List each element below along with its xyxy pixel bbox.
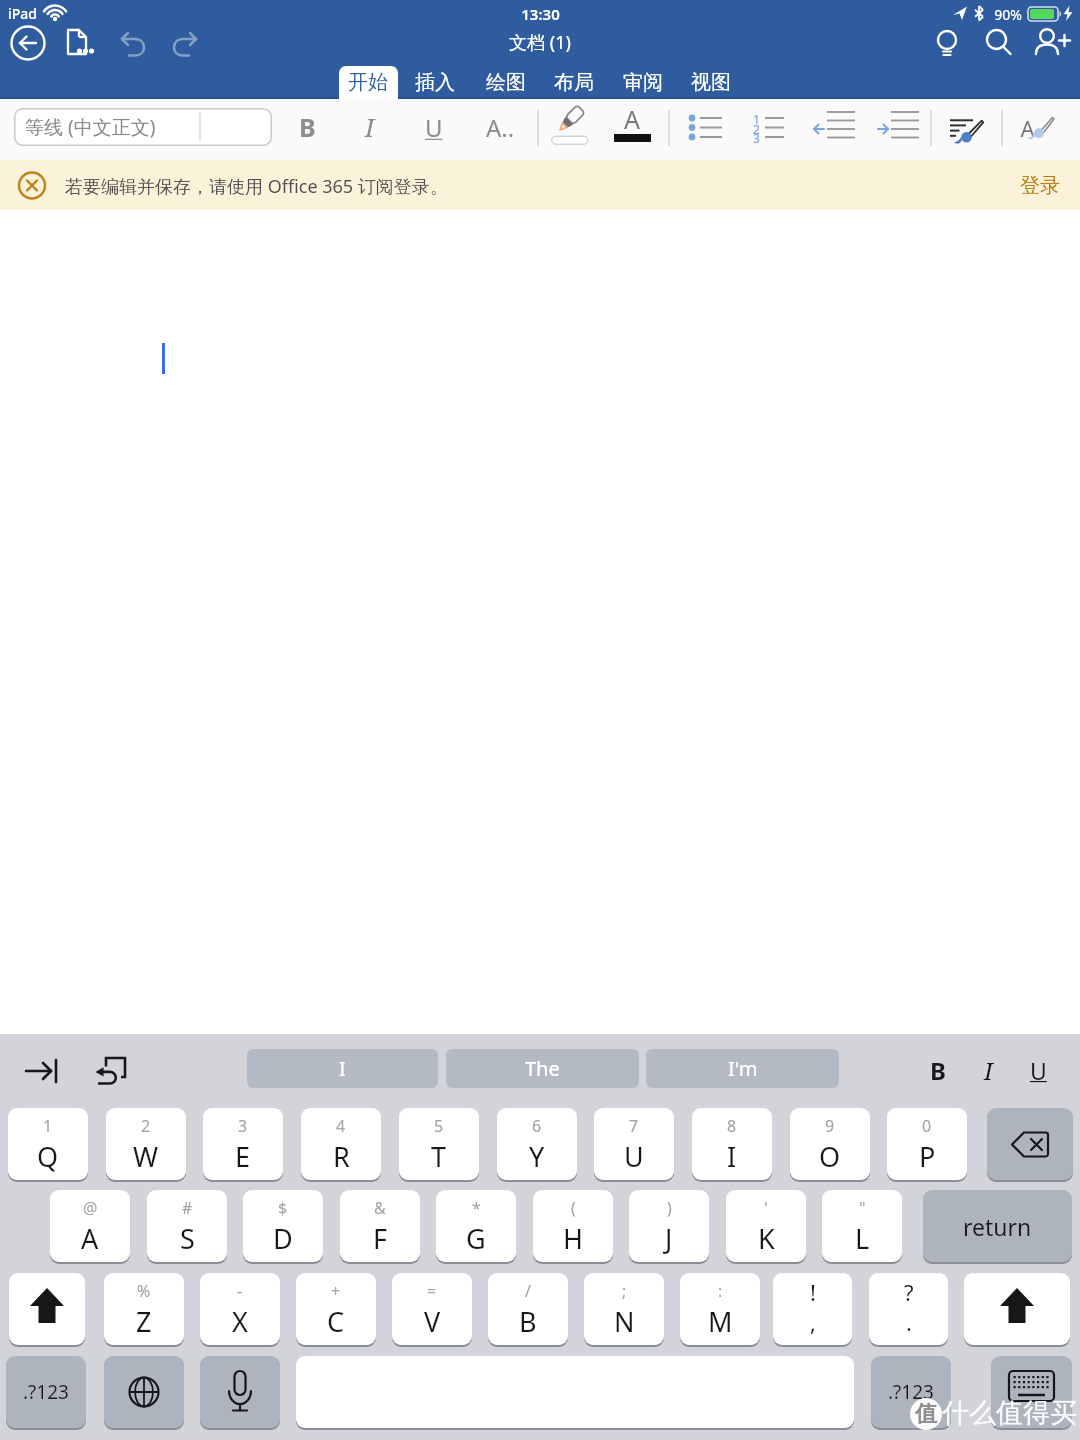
staticText: : <box>718 1280 723 1302</box>
button[interactable] <box>867 103 923 151</box>
button[interactable] <box>104 1356 184 1428</box>
button[interactable]: " <box>822 1190 902 1262</box>
staticText: T <box>431 1138 447 1175</box>
button[interactable]: % <box>104 1273 184 1345</box>
button[interactable] <box>21 1049 65 1093</box>
button[interactable]: * <box>436 1190 516 1262</box>
button[interactable] <box>937 103 993 151</box>
button[interactable]: B <box>915 1048 960 1093</box>
button[interactable]: / <box>488 1273 568 1345</box>
button[interactable]: .?123 <box>871 1356 951 1428</box>
button[interactable] <box>742 103 798 151</box>
button[interactable]: I'm <box>646 1049 839 1088</box>
button[interactable] <box>982 26 1016 60</box>
button[interactable]: 等线 (中文正文) <box>14 108 272 146</box>
button[interactable] <box>679 103 735 151</box>
button[interactable]: I <box>247 1049 438 1088</box>
button[interactable] <box>64 26 96 58</box>
button[interactable]: @ <box>50 1190 130 1262</box>
button[interactable]: 4 <box>301 1108 381 1180</box>
button[interactable] <box>987 1108 1073 1180</box>
button[interactable]: return <box>923 1190 1072 1262</box>
button[interactable]: ! <box>773 1273 852 1345</box>
button[interactable]: : <box>680 1273 760 1345</box>
staticText: = <box>427 1280 437 1302</box>
button[interactable]: - <box>200 1273 280 1345</box>
button[interactable] <box>200 1356 280 1428</box>
button[interactable]: A.. <box>474 105 526 149</box>
staticText: C <box>327 1303 345 1340</box>
button[interactable] <box>9 24 47 62</box>
button[interactable] <box>542 103 598 151</box>
staticText: U <box>1030 1055 1047 1086</box>
button[interactable]: 3 <box>203 1108 283 1180</box>
staticText: B <box>930 1054 946 1087</box>
button[interactable] <box>604 103 660 151</box>
button[interactable] <box>930 26 964 60</box>
button[interactable] <box>9 1273 85 1345</box>
button[interactable] <box>803 103 859 151</box>
button[interactable]: ? <box>869 1273 948 1345</box>
button[interactable]: .?123 <box>6 1356 86 1428</box>
button[interactable]: 绘图 <box>473 66 539 98</box>
staticText: J <box>665 1220 673 1257</box>
staticText: Y <box>529 1138 545 1175</box>
staticText: S <box>180 1220 195 1257</box>
button[interactable] <box>339 66 398 100</box>
staticText: I'm <box>728 1055 758 1082</box>
staticText: 绘图 <box>486 70 526 95</box>
button[interactable] <box>88 1048 132 1092</box>
button[interactable]: 0 <box>887 1108 967 1180</box>
staticText: A <box>624 102 640 136</box>
button[interactable]: + <box>296 1273 376 1345</box>
staticText: / <box>525 1280 531 1302</box>
button[interactable]: 6 <box>497 1108 577 1180</box>
button[interactable]: 审阅 <box>610 66 676 98</box>
button[interactable]: ; <box>584 1273 664 1345</box>
staticText: 0 <box>922 1115 932 1137</box>
button[interactable]: ) <box>629 1190 709 1262</box>
button[interactable]: B <box>285 105 329 149</box>
button[interactable]: 视图 <box>678 66 744 98</box>
button[interactable] <box>1012 103 1068 151</box>
staticText: 3 <box>238 1115 248 1137</box>
staticText: 等线 (中文正文) <box>25 114 156 140</box>
button[interactable]: = <box>392 1273 472 1345</box>
button[interactable]: The <box>446 1049 639 1088</box>
button[interactable] <box>169 28 203 58</box>
button[interactable]: I <box>966 1048 1011 1093</box>
staticText: B <box>519 1303 537 1340</box>
button[interactable]: 插入 <box>402 66 468 98</box>
button[interactable] <box>964 1273 1070 1345</box>
staticText: V <box>424 1303 441 1340</box>
staticText: 审阅 <box>623 70 663 95</box>
button[interactable]: 布局 <box>541 66 607 98</box>
button[interactable]: 登录 <box>1006 164 1074 206</box>
button[interactable]: U <box>412 105 456 149</box>
staticText: 2 <box>141 1115 151 1137</box>
staticText: L <box>855 1220 870 1257</box>
staticText: ! <box>810 1277 816 1305</box>
button[interactable]: ( <box>533 1190 613 1262</box>
button[interactable]: 1 <box>8 1108 88 1180</box>
button[interactable]: ' <box>726 1190 806 1262</box>
staticText: 13:30 <box>521 4 560 24</box>
button[interactable] <box>991 1356 1072 1428</box>
staticText: 值 <box>915 1400 937 1428</box>
button[interactable]: I <box>348 105 392 149</box>
staticText: ; <box>622 1280 627 1302</box>
staticText: 6 <box>532 1115 542 1137</box>
button[interactable]: 2 <box>106 1108 186 1180</box>
button[interactable] <box>115 28 149 58</box>
button[interactable]: 9 <box>790 1108 870 1180</box>
button[interactable]: # <box>147 1190 227 1262</box>
button[interactable]: & <box>340 1190 420 1262</box>
button[interactable]: U <box>1016 1048 1061 1093</box>
button[interactable]: 8 <box>692 1108 772 1180</box>
button[interactable] <box>1032 26 1074 60</box>
button[interactable]: $ <box>243 1190 323 1262</box>
button[interactable]: 7 <box>594 1108 674 1180</box>
button[interactable]: 5 <box>399 1108 479 1180</box>
staticText: 什么值得买 <box>942 1396 1077 1430</box>
